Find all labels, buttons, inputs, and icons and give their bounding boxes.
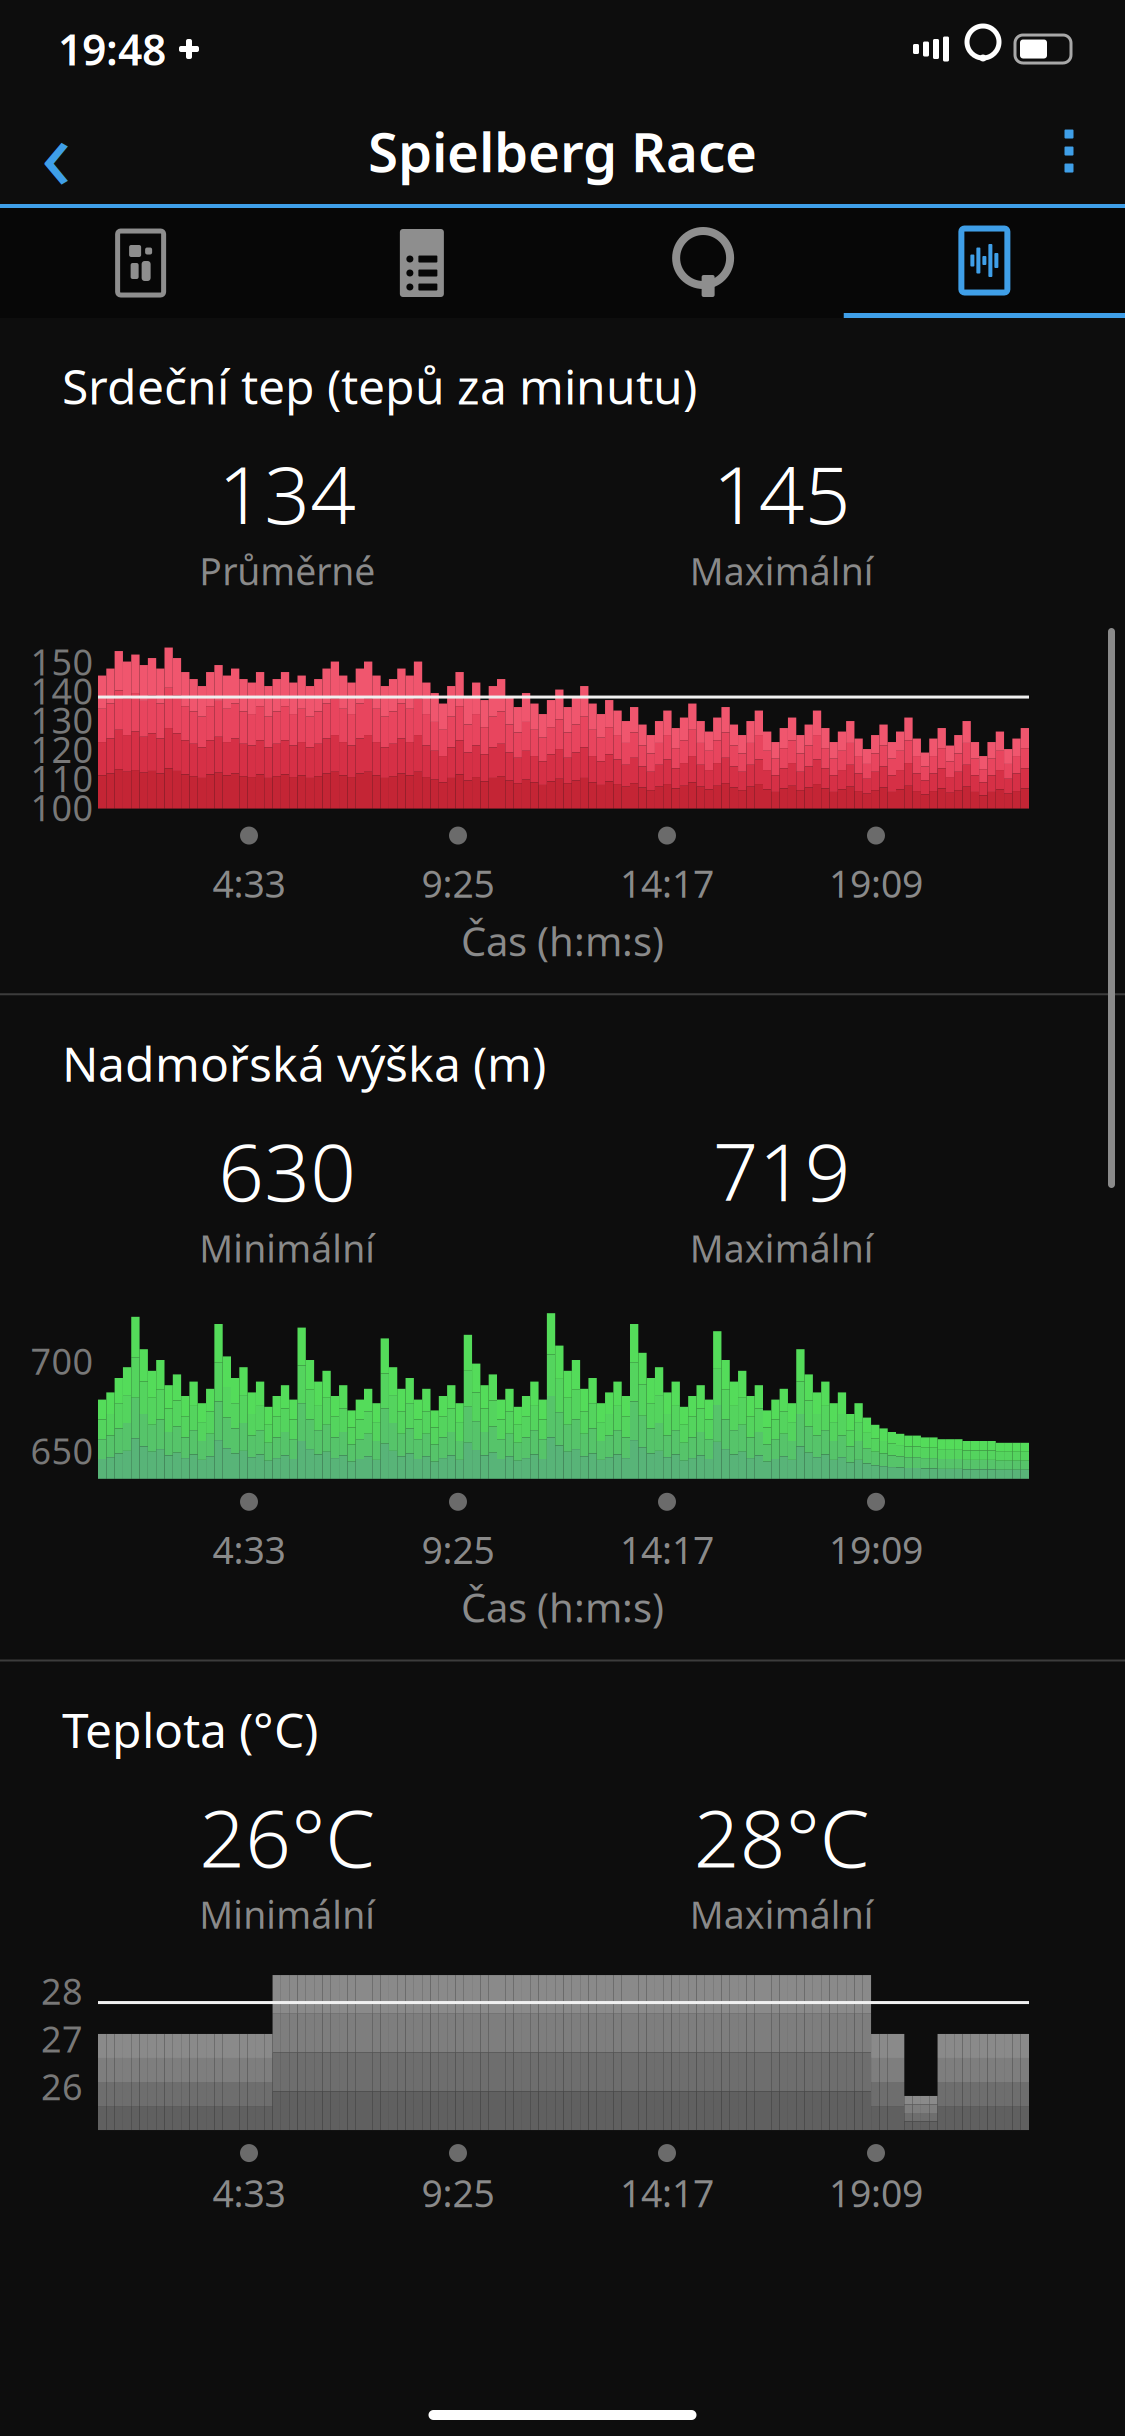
staticText: 26: [41, 2062, 83, 2110]
staticText: Teplota (°C): [62, 1697, 318, 1761]
button[interactable]: Charts: [844, 208, 1125, 318]
staticText: 26°C: [199, 1783, 375, 1889]
staticText: 4:33: [212, 859, 285, 908]
button[interactable]: Summary: [281, 208, 562, 318]
staticText: Nadmořská výška (m): [62, 1031, 546, 1095]
staticText: 9:25: [421, 1525, 494, 1574]
staticText: 14:17: [620, 859, 714, 908]
staticText: 134: [218, 440, 356, 546]
staticText: 100: [30, 783, 93, 813]
staticText: Spielberg Race: [368, 115, 757, 187]
staticText: 19:09: [829, 859, 923, 908]
staticText: 27: [41, 2015, 83, 2062]
button[interactable]: Back: [6, 101, 106, 201]
staticText: 9:25: [421, 859, 494, 908]
staticText: 19:09: [829, 2168, 923, 2218]
button[interactable]: Laps: [562, 208, 844, 318]
staticText: Maximální: [690, 546, 874, 596]
staticText: 110: [30, 754, 93, 783]
staticText: 19:48: [58, 21, 166, 77]
staticText: 150: [30, 638, 93, 667]
staticText: ‹: [40, 84, 71, 218]
button[interactable]: More options: [1019, 101, 1119, 201]
staticText: 19:09: [829, 1525, 923, 1574]
staticText: 14:17: [620, 2168, 714, 2218]
staticText: Srdeční tep (tepů za minutu): [62, 354, 697, 418]
staticText: 145: [713, 440, 851, 546]
staticText: 4:33: [212, 2168, 285, 2218]
staticText: 700: [30, 1337, 93, 1385]
staticText: 28: [41, 1967, 83, 2015]
staticText: Průměrné: [199, 546, 375, 596]
staticText: 9:25: [421, 2168, 494, 2218]
staticText: Minimální: [199, 1889, 375, 1939]
staticText: 4:33: [212, 1525, 285, 1574]
staticText: Čas (h:m:s): [461, 914, 664, 967]
staticText: 650: [30, 1427, 93, 1474]
staticText: Maximální: [690, 1889, 874, 1939]
staticText: 719: [713, 1117, 851, 1223]
staticText: 14:17: [620, 1525, 714, 1574]
staticText: Čas (h:m:s): [461, 1580, 664, 1633]
staticText: Minimální: [199, 1223, 375, 1273]
button[interactable]: Map: [0, 208, 281, 318]
staticText: Maximální: [690, 1223, 874, 1273]
staticText: 630: [218, 1117, 356, 1223]
staticText: 130: [30, 696, 93, 725]
staticText: 140: [30, 667, 93, 696]
staticText: 120: [30, 725, 93, 754]
staticText: 28°C: [694, 1783, 870, 1889]
